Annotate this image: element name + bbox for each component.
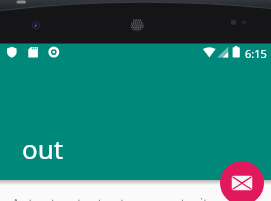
button[interactable] — [220, 161, 264, 201]
button[interactable]: out — [22, 131, 64, 166]
staticText: 6:15 — [245, 46, 267, 61]
staticText: A structure to structure opportunity and — [12, 195, 239, 201]
